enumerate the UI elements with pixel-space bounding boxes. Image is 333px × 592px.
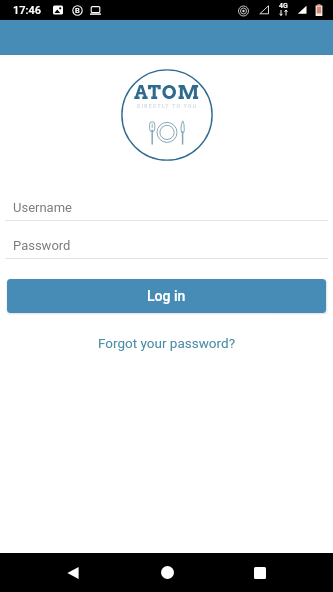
button[interactable]: Forgot your password? (90, 331, 244, 355)
staticText: 4G (279, 2, 288, 10)
button[interactable]: Home (147, 553, 187, 592)
button[interactable]: Password (5, 238, 328, 259)
staticText: 17:46 (13, 4, 41, 17)
button[interactable]: Username (5, 200, 328, 221)
button[interactable]: Log in (7, 279, 326, 313)
staticText: Username (13, 200, 72, 215)
button[interactable]: Back (53, 553, 93, 592)
staticText: Forgot your password? (98, 335, 236, 351)
staticText: ATOM (134, 81, 201, 104)
staticText: Password (13, 238, 71, 253)
staticText: Log in (147, 288, 186, 304)
button[interactable]: Recent apps (240, 553, 280, 592)
staticText: DIRECTLY TO YOU (137, 103, 198, 109)
staticText: B (75, 6, 80, 15)
